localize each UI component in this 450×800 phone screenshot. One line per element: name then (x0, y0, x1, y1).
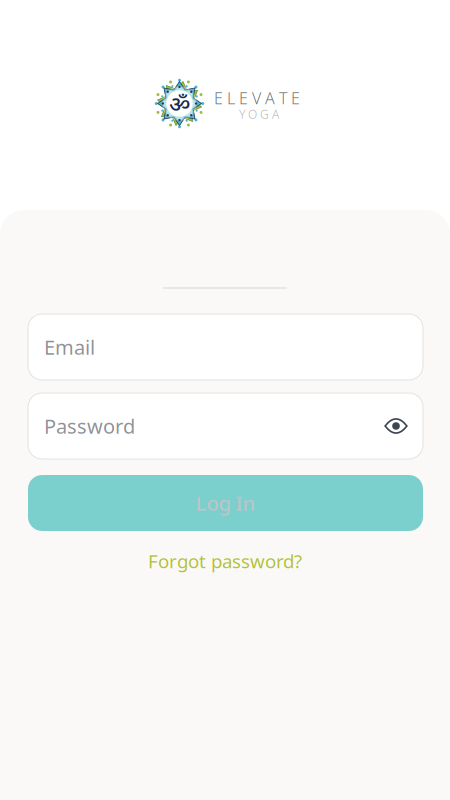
button[interactable]: Log In (28, 475, 423, 531)
staticText: ॐ (169, 88, 190, 118)
button[interactable]: Password (28, 393, 423, 459)
button[interactable]: Email (28, 314, 423, 380)
staticText: Log In (195, 490, 255, 516)
staticText: Email (44, 334, 95, 360)
staticText: Password (44, 413, 135, 439)
button[interactable]: Forgot password? (105, 544, 345, 578)
staticText: Forgot password? (148, 549, 302, 573)
staticText: E L E V A T E (214, 87, 300, 109)
button[interactable]: Show password (378, 408, 414, 444)
staticText: Y O G A (239, 106, 279, 122)
